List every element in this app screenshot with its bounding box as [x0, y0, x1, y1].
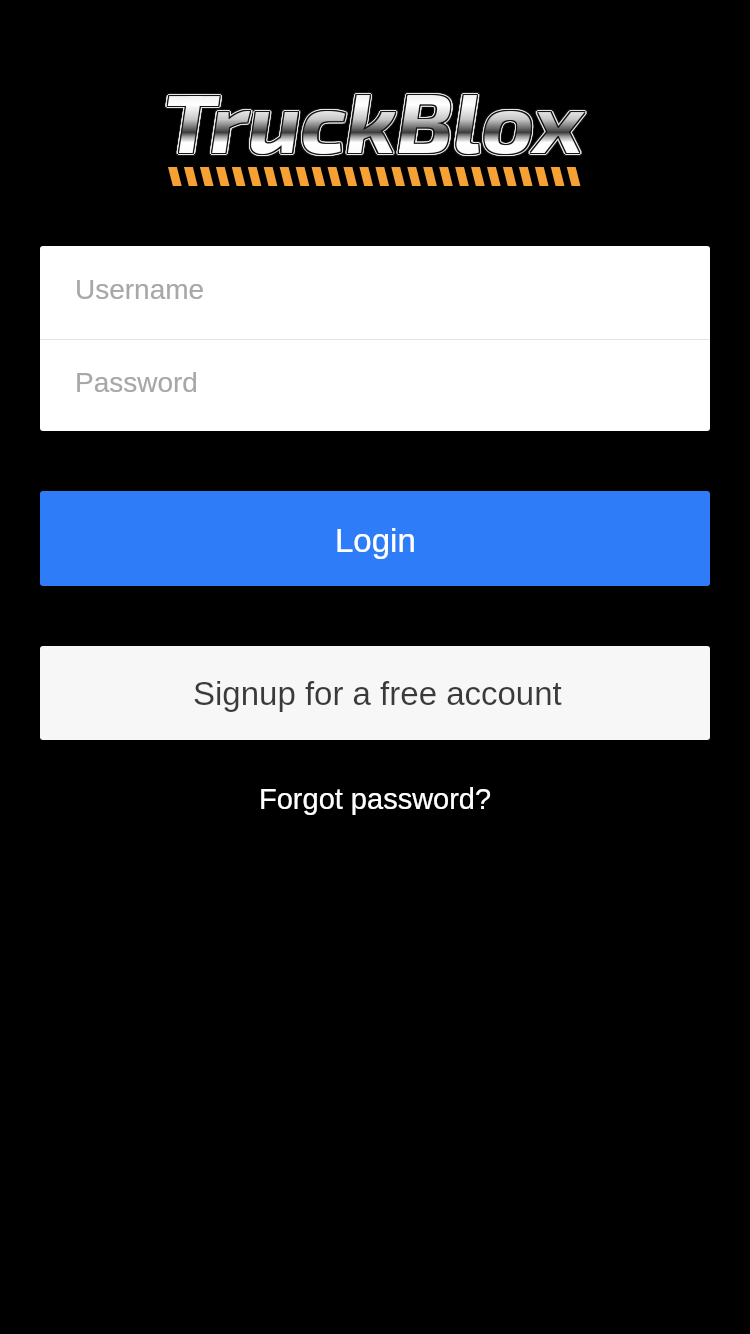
staticText: Login	[335, 522, 416, 559]
staticText: Forgot password?	[259, 783, 492, 815]
staticText: TruckBlox	[162, 69, 583, 167]
staticText: TruckBlox	[164, 70, 585, 168]
staticText: TruckBlox	[164, 73, 585, 171]
staticText: TruckBlox	[164, 72, 585, 170]
staticText: TruckBlox	[161, 71, 582, 169]
staticText: TruckBlox	[160, 71, 581, 169]
staticText: TruckBlox	[161, 70, 582, 168]
staticText: Signup for a free account	[193, 675, 562, 712]
staticText: TruckBlox	[164, 72, 585, 170]
staticText: TruckBlox	[160, 69, 581, 167]
staticText: TruckBlox	[166, 69, 587, 167]
staticText: TruckBlox	[164, 70, 585, 168]
button[interactable]: Forgot password?	[243, 774, 508, 824]
staticText: TruckBlox	[162, 72, 583, 170]
staticText: TruckBlox	[162, 71, 583, 169]
staticText: TruckBlox	[163, 68, 584, 166]
staticText: TruckBlox	[162, 72, 583, 170]
staticText: TruckBlox	[162, 70, 583, 168]
staticText: TruckBlox	[165, 70, 586, 168]
staticText: TruckBlox	[162, 73, 583, 171]
staticText: TruckBlox	[164, 71, 585, 169]
staticText: TruckBlox	[164, 69, 585, 167]
staticText: TruckBlox	[165, 74, 586, 172]
button[interactable]: Login	[40, 491, 710, 586]
staticText: TruckBlox	[163, 71, 584, 169]
staticText: TruckBlox	[163, 73, 584, 171]
staticText: Username	[75, 274, 205, 305]
staticText: Password	[75, 367, 198, 398]
staticText: TruckBlox	[163, 74, 584, 172]
staticText: TruckBlox	[166, 71, 587, 169]
staticText: TruckBlox	[163, 72, 584, 170]
staticText: TruckBlox	[165, 72, 586, 170]
staticText: TruckBlox	[165, 68, 586, 166]
staticText: TruckBlox	[163, 69, 584, 167]
button[interactable]: Password	[40, 340, 710, 431]
staticText: TruckBlox	[163, 70, 584, 168]
staticText: TruckBlox	[161, 74, 582, 172]
staticText: TruckBlox	[161, 68, 582, 166]
button[interactable]: Username	[40, 246, 710, 339]
staticText: TruckBlox	[161, 72, 582, 170]
button[interactable]: Signup for a free account	[40, 646, 710, 740]
staticText: TruckBlox	[165, 71, 586, 169]
staticText: TruckBlox	[162, 70, 583, 168]
staticText: TruckBlox	[160, 73, 581, 171]
staticText: TruckBlox	[166, 73, 587, 171]
